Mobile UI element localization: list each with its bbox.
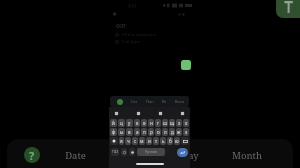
staticText: ?	[29, 148, 35, 163]
staticText: х	[185, 120, 188, 126]
button[interactable]: г	[155, 119, 161, 127]
button[interactable]: ц	[118, 119, 125, 127]
button[interactable]: ь	[160, 137, 166, 145]
button[interactable]: т	[153, 137, 159, 145]
staticText: а	[136, 129, 139, 135]
button[interactable]: Suggestion	[117, 99, 123, 105]
button[interactable]: Stickers	[136, 111, 141, 116]
button[interactable]: Date	[54, 148, 96, 162]
staticText: м	[140, 138, 144, 144]
staticText: Себ Дата	[122, 39, 141, 45]
button[interactable]: Пон	[142, 96, 157, 107]
button[interactable]: Вт	[157, 96, 172, 107]
button[interactable]: Себ Дата	[109, 38, 190, 45]
button[interactable]: App icon	[276, 0, 300, 18]
staticText: Вт	[162, 99, 167, 104]
staticText: Day	[181, 149, 199, 162]
staticText: т	[155, 138, 158, 144]
button[interactable]: Emoji	[129, 148, 135, 156]
button[interactable]: Add	[181, 60, 191, 70]
button[interactable]: и	[146, 137, 152, 145]
button[interactable]: ч	[125, 137, 131, 145]
button[interactable]: Shift	[110, 137, 118, 145]
staticText: ы	[120, 129, 124, 135]
staticText: я	[120, 138, 123, 144]
button[interactable]: ш	[162, 119, 168, 127]
button[interactable]: р	[148, 128, 154, 136]
staticText: у	[128, 120, 131, 126]
button[interactable]: Enter	[177, 148, 188, 157]
button[interactable]: Settings	[158, 111, 163, 116]
staticText: о	[157, 129, 160, 135]
button[interactable]: п	[141, 128, 147, 136]
staticText: КЛИ и привязать	[122, 32, 157, 38]
button[interactable]: д	[169, 128, 175, 136]
staticText: ж	[177, 129, 181, 135]
staticText: в	[128, 129, 131, 135]
button[interactable]: Language	[121, 148, 127, 156]
button[interactable]: More options	[175, 12, 185, 17]
button[interactable]: у	[126, 119, 133, 127]
staticText: Month	[232, 149, 262, 162]
button[interactable]: я	[119, 137, 124, 145]
staticText: Русский	[145, 150, 157, 154]
button[interactable]: Backspace	[181, 137, 189, 145]
button[interactable]: ж	[176, 128, 182, 136]
button[interactable]: з	[176, 119, 182, 127]
staticText: Пон	[146, 99, 154, 104]
staticText: л	[164, 129, 167, 135]
staticText: н	[150, 120, 153, 126]
staticText: ш	[163, 120, 168, 126]
staticText: Сег	[131, 99, 138, 104]
button[interactable]: ф	[110, 128, 117, 136]
button[interactable]: э	[183, 128, 189, 136]
button[interactable]: Voice input	[180, 111, 185, 116]
staticText: ?123	[112, 150, 119, 154]
button[interactable]: Сег	[127, 96, 142, 107]
button[interactable]: Clipboard	[114, 111, 119, 116]
staticText: с	[134, 138, 137, 144]
staticText: е	[143, 120, 146, 126]
button[interactable]: ю	[174, 137, 180, 145]
button[interactable]: Back	[112, 11, 118, 17]
button[interactable]: о	[155, 128, 161, 136]
staticText: Воск	[175, 99, 185, 104]
button[interactable]: с	[132, 137, 138, 145]
staticText: ц	[120, 120, 123, 126]
button[interactable]: н	[148, 119, 154, 127]
staticText: щ	[170, 120, 175, 126]
button[interactable]: а	[134, 128, 140, 136]
staticText: ю	[175, 138, 179, 144]
staticText: й	[112, 120, 115, 126]
staticText: ч	[127, 138, 130, 144]
button[interactable]: Help	[24, 147, 40, 163]
button[interactable]: е	[141, 119, 147, 127]
staticText: э	[185, 129, 188, 135]
staticText: ф	[112, 129, 116, 135]
staticText: ь	[162, 138, 165, 144]
button[interactable]: б	[167, 137, 173, 145]
button[interactable]: ы	[118, 128, 125, 136]
button[interactable]: Month	[226, 148, 268, 162]
staticText: д	[171, 129, 174, 135]
staticText: Date	[65, 149, 86, 162]
button[interactable]: к	[134, 119, 140, 127]
button[interactable]: м	[139, 137, 145, 145]
button[interactable]: Space	[137, 148, 165, 156]
button[interactable]: Воск	[172, 96, 187, 107]
staticText: п	[143, 129, 146, 135]
button[interactable]: Day	[169, 148, 211, 162]
staticText: к	[136, 120, 139, 126]
button[interactable]: щ	[169, 119, 175, 127]
staticText: з	[178, 120, 181, 126]
staticText: р	[150, 129, 153, 135]
button[interactable]: в	[126, 128, 133, 136]
staticText: 9:41	[128, 3, 137, 9]
staticText: г	[157, 120, 159, 126]
button[interactable]: Symbols	[111, 148, 119, 156]
button[interactable]: КЛИ и привязать	[109, 31, 190, 38]
button[interactable]: л	[162, 128, 168, 136]
staticText: и	[148, 138, 151, 144]
button[interactable]: й	[110, 119, 117, 127]
button[interactable]: х	[183, 119, 189, 127]
